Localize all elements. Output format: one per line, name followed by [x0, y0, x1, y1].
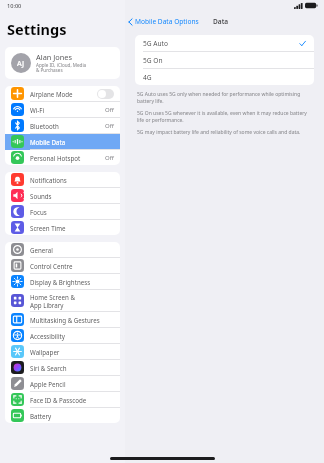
staticText: Apple ID, iCloud, Media & Purchases — [36, 62, 87, 74]
staticText: AJ — [17, 58, 25, 68]
staticText: 10:00 — [7, 2, 22, 10]
button[interactable]: Personal Hotspot — [5, 150, 120, 165]
button[interactable]: Apple Pencil — [5, 376, 120, 392]
button[interactable]: Siri & Search — [5, 360, 120, 376]
staticText: Mobile Data — [30, 138, 66, 146]
staticText: Battery — [30, 412, 52, 420]
button[interactable]: Wi-Fi — [5, 102, 120, 118]
button[interactable]: Sounds — [5, 188, 120, 204]
button[interactable]: Bluetooth — [5, 118, 120, 134]
staticText: 5G Auto uses 5G only when needed for per… — [137, 91, 312, 105]
button[interactable]: Display & Brightness — [5, 274, 120, 290]
button[interactable]: Battery — [5, 408, 120, 423]
staticText: Home Screen & — [30, 293, 75, 301]
button[interactable]: Screen Time — [5, 220, 120, 235]
button[interactable]: Notifications — [5, 172, 120, 188]
button[interactable]: Accessibility — [5, 328, 120, 344]
staticText: Focus — [30, 208, 47, 216]
staticText: Mobile Data Options — [135, 17, 199, 26]
staticText: Settings — [7, 19, 67, 39]
button[interactable]: Focus — [5, 204, 120, 220]
staticText: Multitasking & Gestures — [30, 316, 100, 324]
staticText: Airplane Mode — [30, 90, 73, 98]
button[interactable]: Wallpaper — [5, 344, 120, 360]
staticText: Alan Jones — [36, 52, 73, 62]
staticText: 5G On — [143, 56, 306, 65]
staticText: Face ID & Passcode — [30, 396, 87, 404]
button[interactable]: 5G Auto — [135, 35, 314, 52]
staticText: Off — [105, 154, 114, 162]
button[interactable]: Mobile Data Options — [128, 17, 199, 26]
staticText: 5G On uses 5G whenever it is available, … — [137, 110, 312, 124]
staticText: Display & Brightness — [30, 278, 91, 286]
button[interactable]: Control Centre — [5, 258, 120, 274]
staticText: Screen Time — [30, 224, 66, 232]
button[interactable]: Home Screen & — [5, 290, 120, 312]
button[interactable]: Mobile Data — [5, 134, 120, 150]
button[interactable]: General — [5, 242, 120, 258]
staticText: Wi-Fi — [30, 106, 45, 114]
staticText: Off — [105, 122, 114, 130]
staticText: Siri & Search — [30, 364, 67, 372]
staticText: Personal Hotspot — [30, 154, 81, 162]
button[interactable]: Multitasking & Gestures — [5, 312, 120, 328]
staticText: General — [30, 246, 53, 254]
staticText: 5G may impact battery life and reliabili… — [137, 129, 301, 136]
staticText: Sounds — [30, 192, 52, 200]
staticText: Off — [105, 106, 114, 114]
staticText: Data — [213, 17, 229, 26]
button[interactable]: AJ — [5, 47, 120, 79]
button[interactable]: Airplane Mode toggle — [97, 89, 114, 99]
staticText: 5G Auto — [143, 39, 299, 48]
staticText: Control Centre — [30, 262, 73, 270]
staticText: Bluetooth — [30, 122, 59, 130]
button[interactable]: 5G On — [135, 52, 314, 69]
button[interactable]: Face ID & Passcode — [5, 392, 120, 408]
button[interactable]: 4G — [135, 69, 314, 85]
button[interactable]: Airplane Mode — [5, 86, 120, 102]
staticText: Notifications — [30, 176, 67, 184]
staticText: Apple Pencil — [30, 380, 66, 388]
staticText: Wallpaper — [30, 348, 60, 356]
staticText: App Library — [30, 301, 64, 309]
staticText: Accessibility — [30, 332, 65, 340]
staticText: 4G — [143, 73, 306, 82]
